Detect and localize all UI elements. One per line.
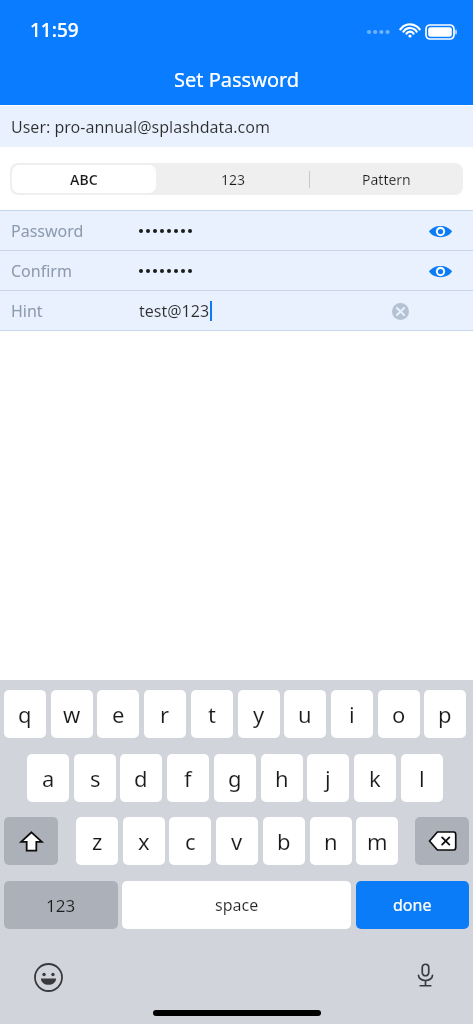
- button[interactable]: 123: [4, 881, 118, 929]
- staticText: i: [349, 699, 355, 729]
- staticText: t: [208, 699, 216, 729]
- button[interactable]: v: [216, 817, 258, 865]
- button[interactable]: Show password: [424, 255, 456, 287]
- button[interactable]: h: [261, 754, 303, 802]
- button[interactable]: a: [27, 754, 69, 802]
- staticText: test@123: [139, 300, 210, 322]
- button[interactable]: Pattern: [310, 163, 463, 195]
- staticText: r: [160, 699, 170, 729]
- staticText: space: [215, 894, 259, 916]
- staticText: d: [134, 763, 148, 793]
- button[interactable]: k: [354, 754, 396, 802]
- staticText: 11:59: [30, 17, 79, 43]
- staticText: 123: [221, 170, 246, 189]
- staticText: p: [438, 699, 452, 729]
- button[interactable]: Clear text: [385, 296, 415, 326]
- button[interactable]: x: [123, 817, 165, 865]
- button[interactable]: d: [120, 754, 162, 802]
- button[interactable]: g: [214, 754, 256, 802]
- button[interactable]: Hint: [0, 291, 473, 330]
- staticText: l: [419, 763, 425, 793]
- button[interactable]: Emoji keyboard: [31, 960, 65, 994]
- staticText: e: [112, 699, 125, 729]
- button[interactable]: e: [97, 690, 139, 738]
- staticText: m: [367, 826, 388, 856]
- staticText: c: [185, 826, 196, 856]
- button[interactable]: f: [167, 754, 209, 802]
- button[interactable]: Confirm: [0, 251, 473, 290]
- staticText: k: [369, 763, 381, 793]
- staticText: Password: [11, 220, 84, 242]
- staticText: h: [275, 763, 289, 793]
- staticText: User: pro-annual@splashdata.com: [11, 116, 270, 138]
- button[interactable]: o: [378, 690, 420, 738]
- button[interactable]: z: [76, 817, 118, 865]
- staticText: b: [277, 826, 291, 856]
- staticText: n: [324, 826, 338, 856]
- staticText: done: [393, 894, 432, 916]
- staticText: j: [325, 763, 331, 793]
- staticText: ABC: [70, 170, 98, 189]
- staticText: a: [42, 763, 55, 793]
- button[interactable]: Backspace: [415, 817, 469, 865]
- button[interactable]: b: [263, 817, 305, 865]
- staticText: o: [392, 699, 406, 729]
- staticText: x: [138, 826, 150, 856]
- button[interactable]: c: [169, 817, 211, 865]
- staticText: Confirm: [11, 260, 72, 282]
- button[interactable]: r: [144, 690, 186, 738]
- button[interactable]: Dictation: [408, 958, 442, 992]
- button[interactable]: j: [307, 754, 349, 802]
- button[interactable]: l: [401, 754, 443, 802]
- staticText: q: [18, 699, 32, 729]
- button[interactable]: space: [122, 881, 351, 929]
- staticText: Hint: [11, 300, 43, 322]
- staticText: v: [231, 826, 243, 856]
- staticText: s: [90, 763, 101, 793]
- staticText: w: [63, 699, 81, 729]
- button[interactable]: t: [191, 690, 233, 738]
- button[interactable]: u: [284, 690, 326, 738]
- staticText: g: [228, 763, 242, 793]
- staticText: y: [253, 699, 265, 729]
- staticText: f: [184, 763, 192, 793]
- button[interactable]: w: [51, 690, 93, 738]
- button[interactable]: n: [310, 817, 352, 865]
- button[interactable]: Password: [0, 211, 473, 250]
- button[interactable]: i: [331, 690, 373, 738]
- button[interactable]: Shift: [4, 817, 58, 865]
- staticText: u: [298, 699, 312, 729]
- button[interactable]: Show password: [424, 215, 456, 247]
- button[interactable]: q: [4, 690, 46, 738]
- button[interactable]: s: [74, 754, 116, 802]
- button[interactable]: m: [356, 817, 398, 865]
- button[interactable]: done: [356, 881, 469, 929]
- staticText: z: [92, 826, 103, 856]
- staticText: Pattern: [362, 170, 411, 189]
- button[interactable]: p: [424, 690, 466, 738]
- button[interactable]: ABC: [12, 165, 156, 193]
- button[interactable]: y: [238, 690, 280, 738]
- button[interactable]: 123: [158, 163, 309, 195]
- staticText: 123: [46, 894, 76, 917]
- staticText: Set Password: [174, 66, 300, 93]
